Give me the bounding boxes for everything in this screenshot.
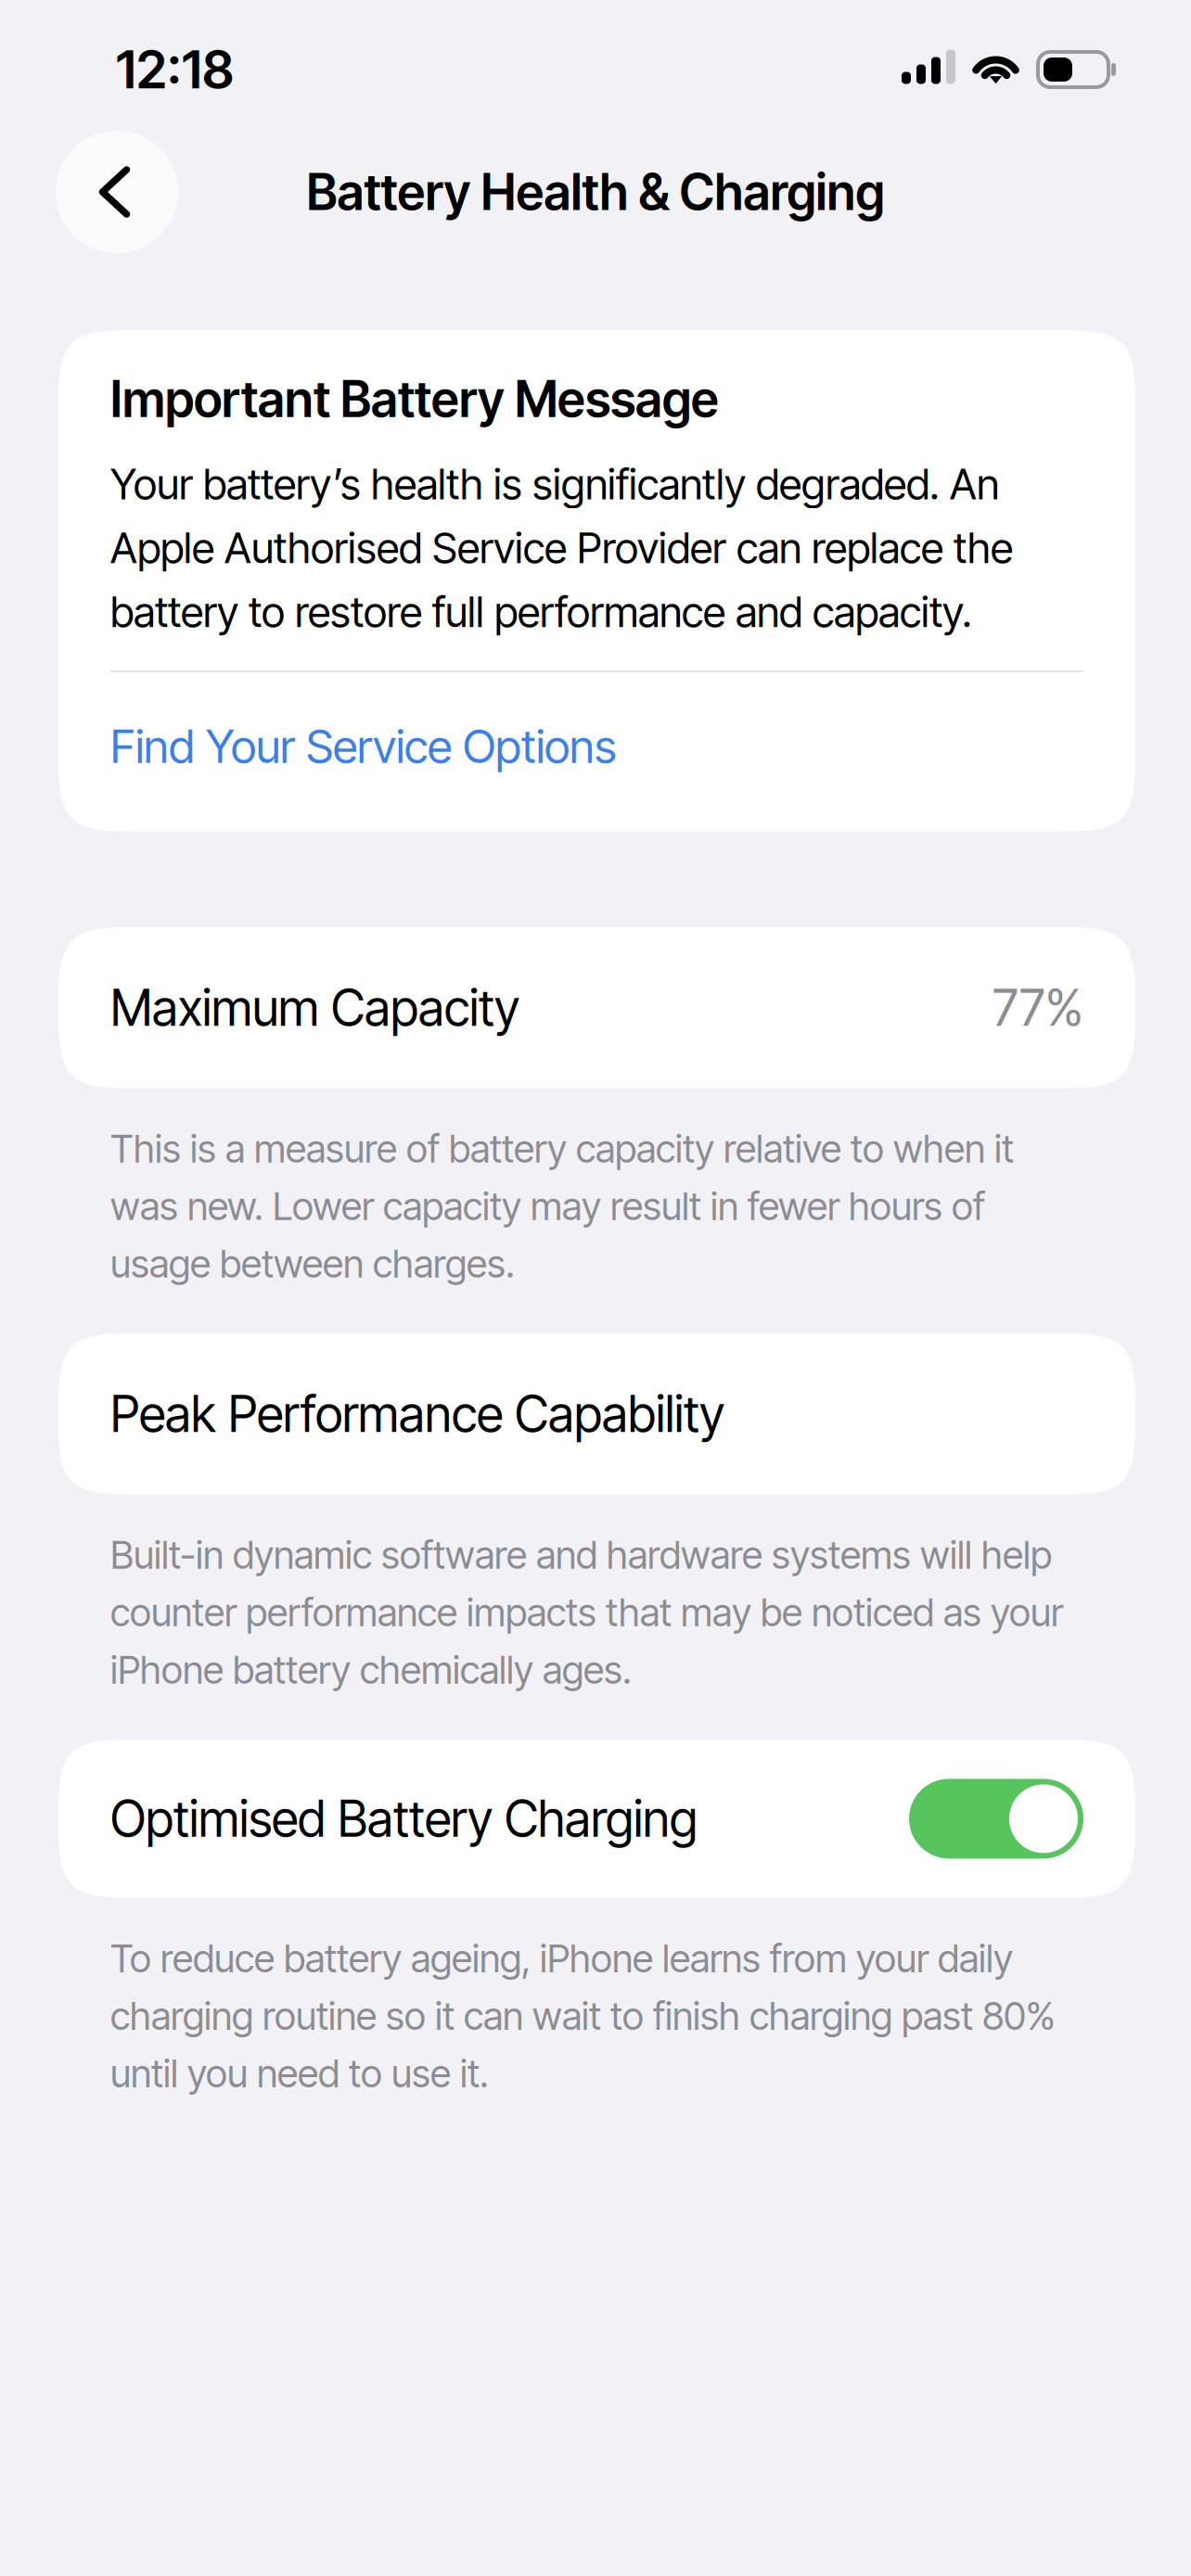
staticText: This is a measure of battery capacity re… (110, 1126, 1014, 1287)
staticText: Your battery’s health is significantly d… (110, 459, 1013, 637)
staticText: Find Your Service Options (110, 719, 616, 774)
staticText: To reduce battery ageing, iPhone learns … (110, 1935, 1056, 2096)
staticText: Battery Health & Charging (307, 162, 884, 222)
button[interactable]: Back (56, 131, 178, 253)
button[interactable]: Find Your Service Options (110, 672, 1083, 832)
staticText: 77% (992, 978, 1083, 1038)
button[interactable]: Optimised Battery Charging (909, 1779, 1083, 1859)
button[interactable]: Peak Performance Capability (58, 1333, 1083, 1495)
staticText: Important Battery Message (110, 369, 719, 429)
staticText: Peak Performance Capability (110, 1384, 724, 1444)
staticText: 12:18 (116, 38, 234, 101)
staticText: Maximum Capacity (110, 978, 519, 1038)
staticText: Built-in dynamic software and hardware s… (110, 1532, 1063, 1693)
staticText: Optimised Battery Charging (110, 1789, 698, 1849)
